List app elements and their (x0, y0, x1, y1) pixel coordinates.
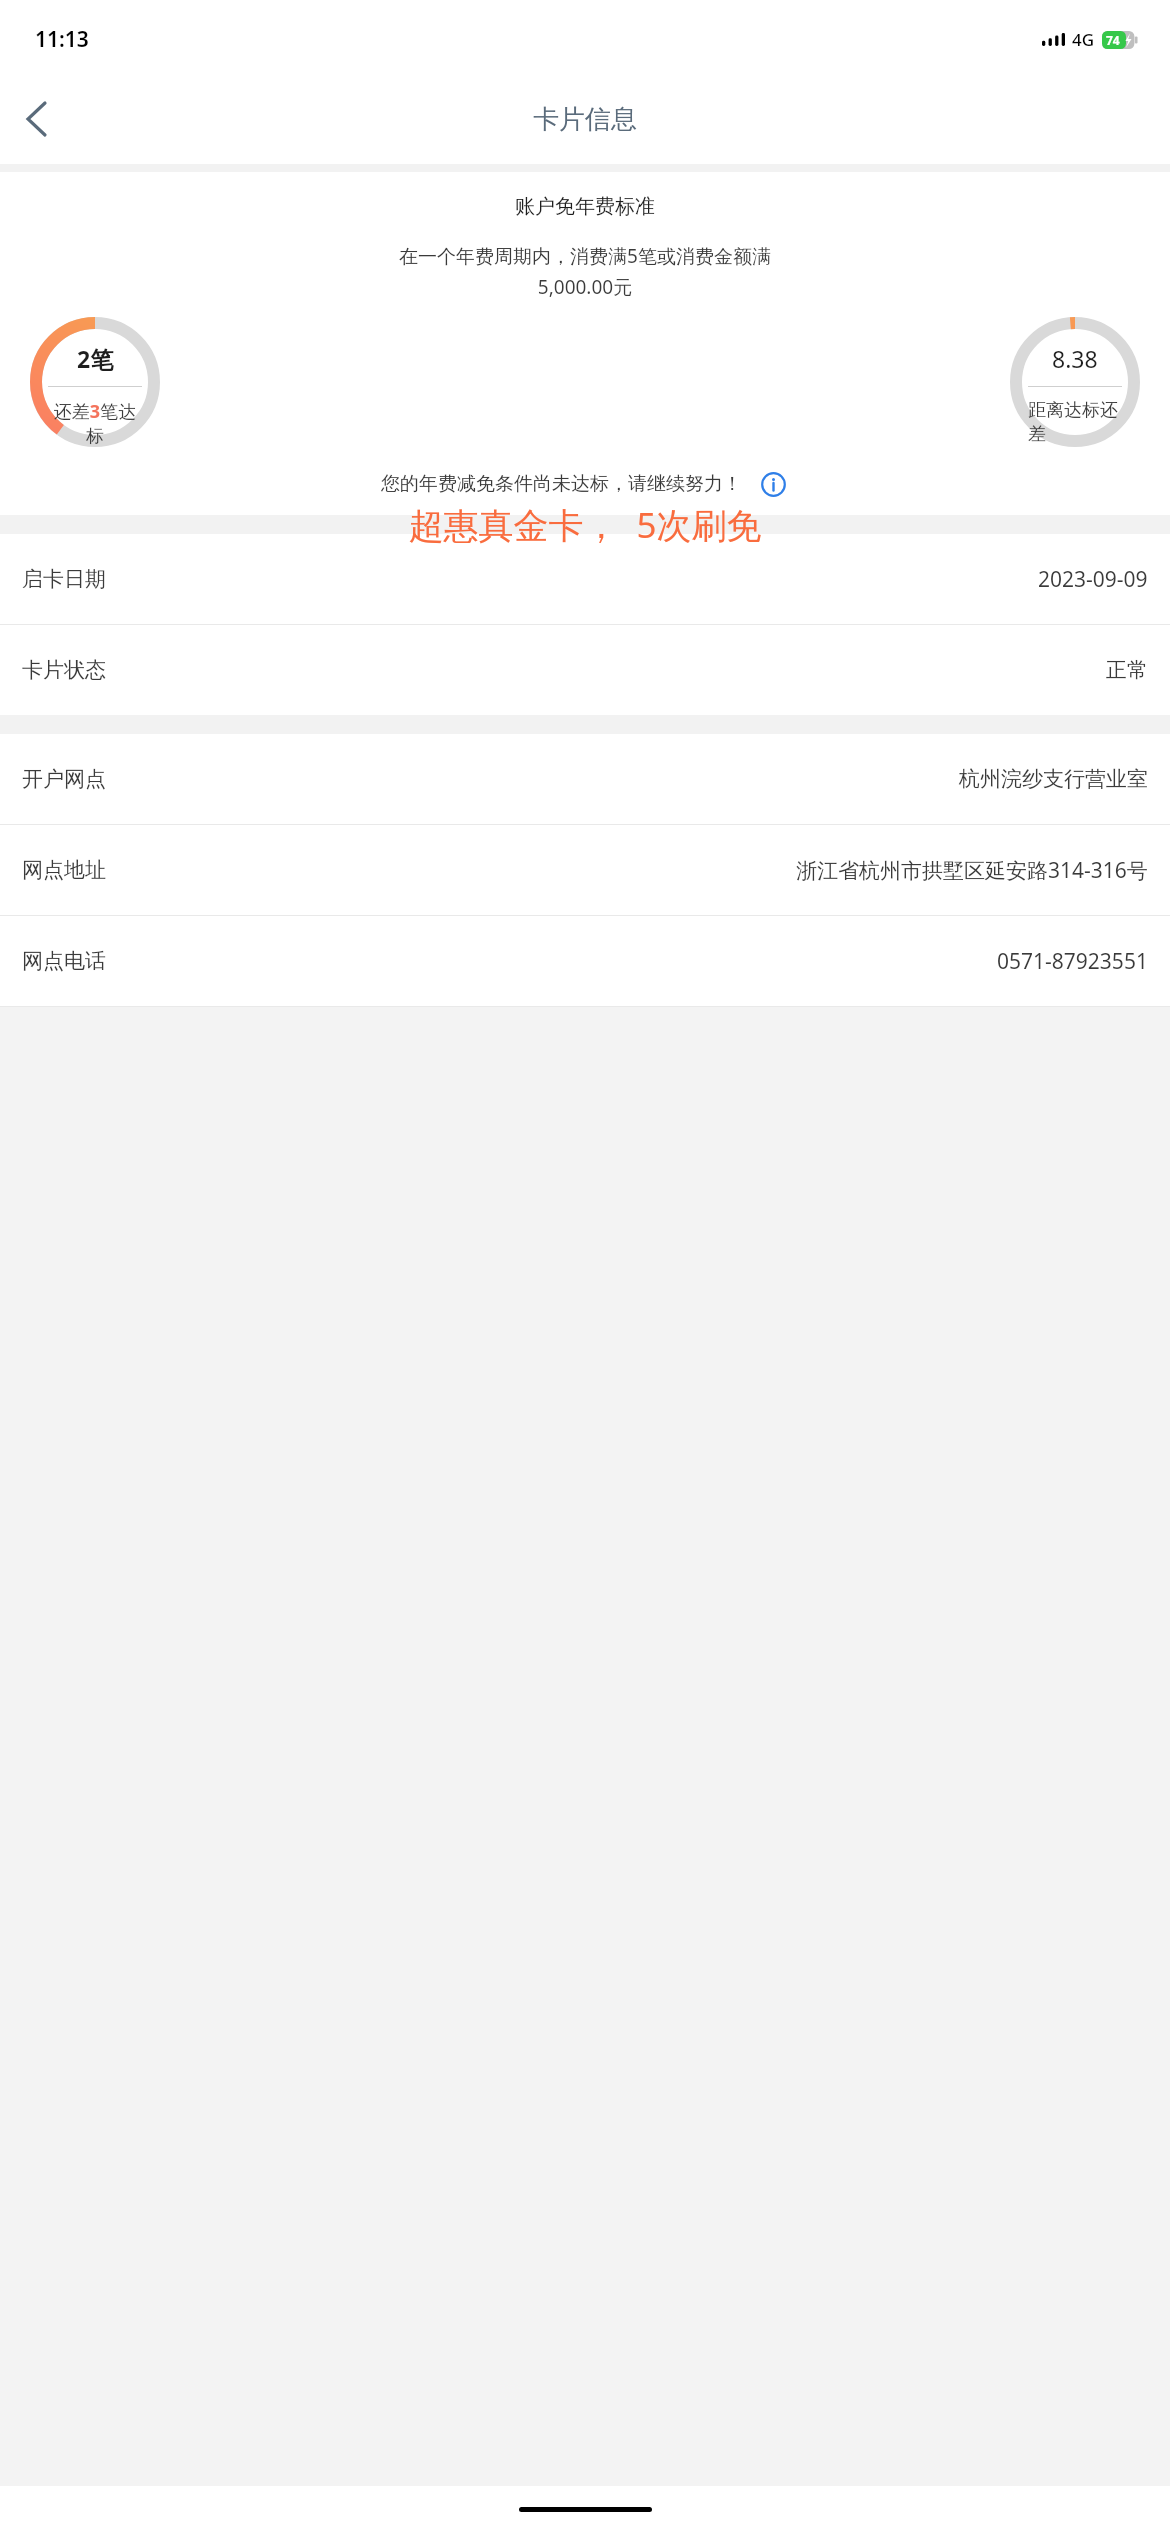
button[interactable]: 开户网点 (0, 734, 1170, 824)
staticText: 在一个年费周期内，消费满5笔或消费金额满 5,000.00元 (26, 243, 1144, 299)
staticText: 网点地址 (22, 857, 106, 883)
staticText: 您的年费减免条件尚未达标，请继续努力！ (381, 472, 742, 496)
staticText: 超惠真金卡， 5次刷免 (0, 501, 1170, 549)
staticText: 8.38 (1052, 343, 1098, 374)
staticText: 0571-87923551 (997, 947, 1148, 976)
button[interactable]: Back (0, 83, 72, 155)
staticText: 浙江省杭州市拱墅区延安路314-316号 (796, 856, 1148, 885)
staticText: 开户网点 (22, 766, 106, 792)
staticText: 4G (1072, 28, 1095, 51)
staticText: 还差3笔达标 (48, 399, 142, 447)
staticText: 杭州浣纱支行营业室 (959, 766, 1148, 792)
staticText: 2笔 (77, 343, 114, 374)
staticText: 网点电话 (22, 948, 106, 974)
staticText: 11:13 (35, 25, 89, 54)
button[interactable]: 卡片状态 (0, 625, 1170, 715)
button[interactable]: 启卡日期 (0, 534, 1170, 624)
staticText: 卡片状态 (22, 657, 106, 683)
staticText: 74 (1106, 32, 1120, 48)
staticText: 账户免年费标准 (0, 194, 1170, 219)
button[interactable]: 网点地址 (0, 825, 1170, 915)
staticText: 正常 (1106, 657, 1148, 683)
staticText: 2023-09-09 (1038, 565, 1148, 594)
button[interactable]: 网点电话 (0, 916, 1170, 1006)
staticText: 卡片信息 (533, 103, 637, 136)
staticText: 启卡日期 (22, 566, 106, 592)
button[interactable]: More info (756, 467, 790, 501)
staticText: 距离达标还差 (1028, 399, 1122, 445)
